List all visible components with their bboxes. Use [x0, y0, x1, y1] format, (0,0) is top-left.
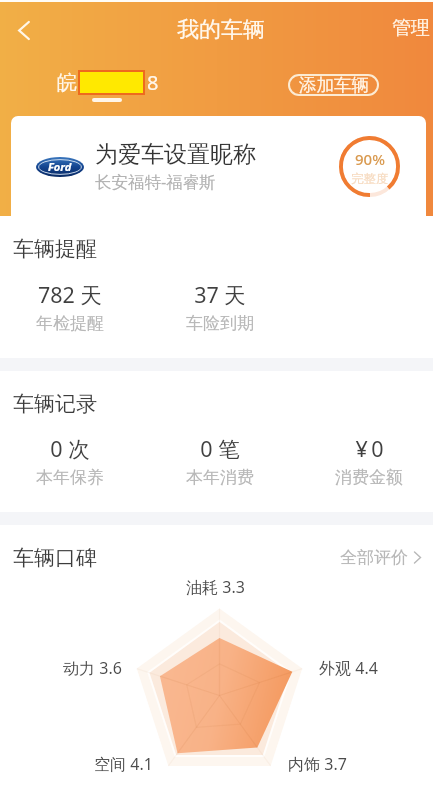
staticText: 0 次: [50, 434, 90, 463]
staticText: 90%: [355, 149, 385, 169]
staticText: 本年消费: [186, 467, 254, 488]
staticText: 空间 4.1: [94, 753, 153, 775]
staticText: 0 笔: [200, 434, 240, 463]
staticText: 8: [147, 69, 159, 96]
staticText: 消费金额: [335, 467, 403, 488]
staticText: 我的车辆: [177, 16, 265, 44]
button[interactable]: Back: [8, 14, 40, 46]
staticText: 年检提醒: [36, 313, 104, 334]
staticText: 添加车辆: [299, 74, 369, 96]
staticText: 管理: [392, 16, 430, 40]
staticText: Ford: [48, 159, 72, 174]
staticText: 动力 3.6: [63, 657, 122, 679]
button[interactable]: 管理: [392, 16, 430, 40]
staticText: 车辆记录: [13, 391, 97, 417]
staticText: 长安福特-福睿斯: [95, 170, 216, 193]
staticText: 车辆提醒: [13, 236, 97, 262]
staticText: 全部评价: [340, 547, 408, 568]
staticText: ¥ 0: [355, 434, 384, 463]
button[interactable]: 全部评价: [340, 547, 421, 568]
staticText: 为爱车设置昵称: [95, 140, 256, 169]
staticText: 782 天: [38, 280, 102, 309]
staticText: 37 天: [194, 280, 246, 309]
button[interactable]: Ford: [11, 116, 426, 216]
staticText: 油耗 3.3: [186, 576, 245, 598]
staticText: 车险到期: [186, 313, 254, 334]
staticText: 车辆口碑: [13, 545, 97, 571]
button[interactable]: 添加车辆: [288, 74, 379, 96]
staticText: 内饰 3.7: [288, 753, 347, 775]
staticText: 外观 4.4: [319, 657, 378, 679]
staticText: 本年保养: [36, 467, 104, 488]
staticText: 皖: [57, 70, 77, 95]
staticText: 完整度: [351, 171, 389, 187]
